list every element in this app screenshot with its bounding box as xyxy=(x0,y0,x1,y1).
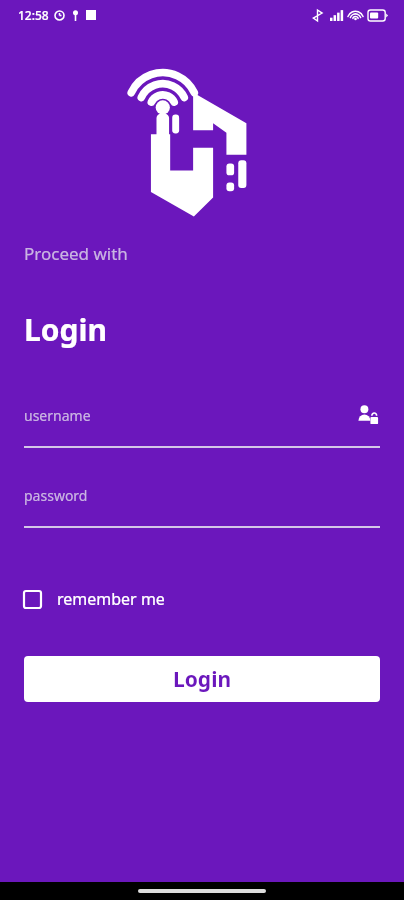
staticText: remember me xyxy=(57,588,165,610)
staticText: Login xyxy=(173,665,232,694)
staticText: 12:58 xyxy=(18,7,49,23)
staticText: Proceed with xyxy=(24,242,128,265)
other: Username account xyxy=(356,403,380,427)
button[interactable]: password xyxy=(24,478,380,528)
button[interactable]: username xyxy=(24,398,380,448)
staticText: password xyxy=(24,486,380,505)
button[interactable]: Login xyxy=(24,656,380,702)
staticText: Login xyxy=(24,309,107,350)
button[interactable]: remember me xyxy=(24,584,165,614)
staticText: username xyxy=(24,406,356,425)
